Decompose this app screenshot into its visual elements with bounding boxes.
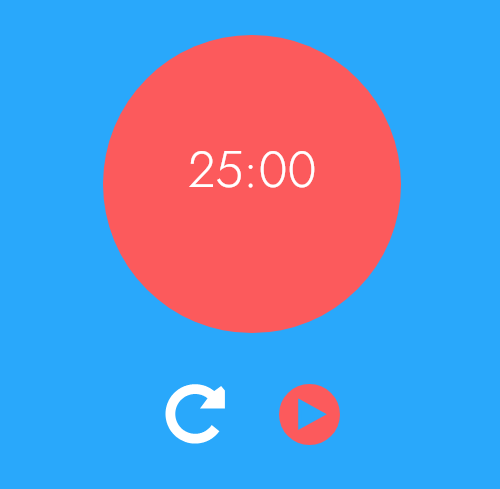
button[interactable]: Start timer (279, 384, 340, 445)
staticText: 25:00 (188, 133, 317, 205)
button[interactable]: Restart timer (158, 378, 234, 454)
button[interactable]: Timer dial (103, 35, 401, 333)
